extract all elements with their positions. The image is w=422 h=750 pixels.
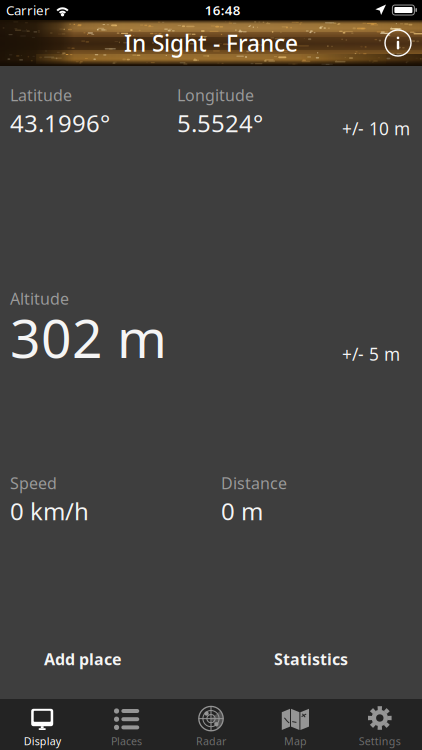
staticText: Statistics bbox=[274, 648, 348, 670]
staticText: Radar bbox=[196, 734, 226, 748]
staticText: Altitude bbox=[10, 288, 69, 309]
staticText: 302 m bbox=[10, 302, 167, 373]
staticText: Map bbox=[284, 734, 307, 748]
button[interactable]: Map bbox=[253, 699, 338, 750]
staticText: Add place bbox=[44, 648, 122, 670]
staticText: 0 km/h bbox=[10, 495, 89, 527]
button[interactable]: Statistics bbox=[269, 643, 353, 675]
staticText: In Sight - France bbox=[124, 28, 298, 58]
button[interactable]: Settings bbox=[338, 699, 422, 750]
staticText: Speed bbox=[10, 472, 57, 494]
staticText: Places bbox=[111, 734, 142, 748]
staticText: 16:48 bbox=[205, 1, 241, 19]
staticText: Latitude bbox=[10, 84, 72, 106]
staticText: 43.1996° bbox=[10, 107, 110, 139]
staticText: Longitude bbox=[177, 84, 254, 106]
staticText: +/- 10 m bbox=[342, 117, 410, 140]
staticText: Display bbox=[24, 734, 61, 748]
staticText: Carrier bbox=[6, 1, 50, 19]
button[interactable]: Add place bbox=[38, 643, 128, 675]
staticText: +/- 5 m bbox=[342, 342, 400, 365]
button[interactable]: Display bbox=[0, 699, 84, 750]
staticText: Settings bbox=[359, 734, 401, 748]
staticText: 5.5524° bbox=[177, 107, 263, 139]
staticText: 0 m bbox=[221, 495, 263, 527]
button[interactable]: Radar bbox=[169, 699, 253, 750]
button[interactable]: Info bbox=[376, 20, 420, 66]
staticText: Distance bbox=[221, 472, 287, 494]
button[interactable]: Places bbox=[84, 699, 169, 750]
